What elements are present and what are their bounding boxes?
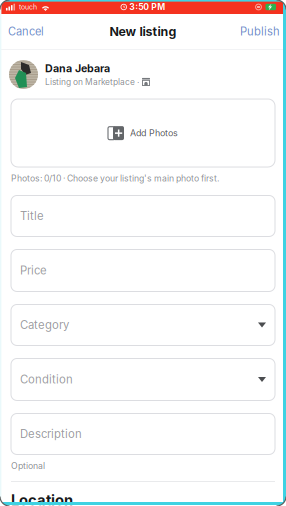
button[interactable]: Cancel bbox=[0, 17, 52, 46]
staticText: Photos: 0/10 · Choose your listing's mai… bbox=[11, 173, 219, 183]
staticText: Listing on Marketplace · bbox=[45, 77, 139, 87]
staticText: Price bbox=[20, 264, 47, 277]
staticText: New listing bbox=[109, 24, 176, 39]
staticText: Add Photos bbox=[130, 128, 178, 138]
staticText: Dana Jebara bbox=[45, 62, 110, 75]
staticText: Cancel bbox=[8, 25, 44, 38]
button[interactable]: Condition bbox=[11, 358, 275, 400]
button[interactable]: Add Photos bbox=[11, 99, 275, 167]
staticText: Condition bbox=[20, 373, 73, 386]
button[interactable]: Price bbox=[11, 249, 275, 291]
button[interactable]: Category bbox=[11, 304, 275, 345]
staticText: Category bbox=[20, 318, 69, 332]
button[interactable]: Publish bbox=[234, 17, 286, 46]
button[interactable]: Title bbox=[11, 195, 275, 236]
staticText: Location bbox=[11, 491, 73, 506]
button[interactable]: Description bbox=[11, 413, 275, 454]
staticText: touch bbox=[19, 3, 37, 11]
staticText: Publish bbox=[240, 25, 280, 38]
staticText: Optional bbox=[11, 460, 45, 471]
staticText: Title bbox=[20, 209, 44, 223]
staticText: 3:50 PM bbox=[129, 2, 165, 12]
staticText: Description bbox=[20, 427, 82, 441]
